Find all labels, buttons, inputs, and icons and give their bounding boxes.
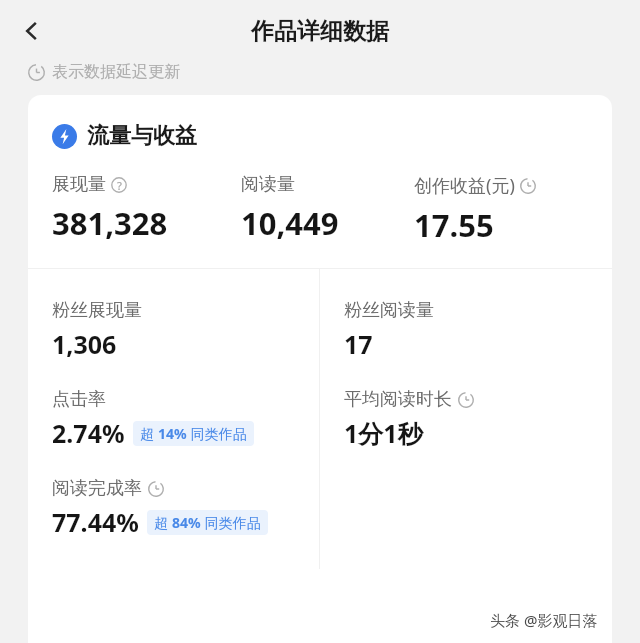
- button[interactable]: 平均阅读时长: [320, 388, 612, 450]
- staticText: 超: [140, 424, 158, 443]
- staticText: 381,328: [52, 202, 168, 244]
- staticText: 超: [154, 513, 172, 532]
- staticText: 1分1秒: [344, 416, 423, 450]
- button[interactable]: 阅读完成率: [28, 477, 319, 539]
- staticText: 14%: [158, 424, 187, 443]
- button[interactable]: 阅读量: [241, 173, 414, 244]
- staticText: 17.55: [414, 204, 494, 246]
- staticText: 粉丝展现量: [52, 299, 142, 322]
- staticText: 展现量: [52, 173, 106, 196]
- button[interactable]: 粉丝阅读量: [320, 299, 612, 361]
- staticText: 同类作品: [201, 513, 261, 532]
- staticText: 阅读完成率: [52, 477, 142, 500]
- staticText: 2.74%: [52, 416, 125, 450]
- button[interactable]: 创作收益(元): [414, 173, 602, 246]
- staticText: 平均阅读时长: [344, 388, 452, 411]
- button[interactable]: 粉丝展现量: [28, 299, 319, 361]
- staticText: 17: [344, 327, 373, 361]
- staticText: 77.44%: [52, 505, 139, 539]
- staticText: 1,306: [52, 327, 117, 361]
- staticText: 流量与收益: [87, 122, 197, 150]
- staticText: 84%: [172, 513, 201, 532]
- staticText: 同类作品: [187, 424, 247, 443]
- staticText: 创作收益(元): [414, 173, 515, 198]
- button[interactable]: Back: [8, 7, 56, 55]
- button[interactable]: 点击率: [28, 388, 319, 450]
- staticText: 头条 @影观日落: [490, 610, 598, 630]
- staticText: 粉丝阅读量: [344, 299, 434, 322]
- staticText: 作品详细数据: [251, 17, 389, 46]
- staticText: ?: [117, 178, 122, 193]
- button[interactable]: 展现量: [52, 173, 241, 244]
- staticText: 10,449: [241, 202, 339, 244]
- staticText: 阅读量: [241, 173, 295, 196]
- staticText: 表示数据延迟更新: [52, 62, 180, 82]
- staticText: 点击率: [52, 388, 106, 411]
